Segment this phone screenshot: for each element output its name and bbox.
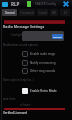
staticText: RM (52, 11, 56, 15)
button[interactable]: General (2, 9, 17, 16)
staticText: software (20, 103, 31, 107)
button[interactable]: Sound (37, 9, 48, 16)
staticText: Sound (39, 11, 47, 15)
button[interactable]: RM (50, 9, 58, 16)
button[interactable]: Enable radio msgs (22, 51, 55, 57)
staticText: Notification sound options (3, 43, 38, 47)
button[interactable]: Enable Retro Mode (22, 88, 57, 94)
staticText: Commands (20, 11, 34, 15)
staticText: Enable radio msgs (30, 52, 55, 56)
staticText: Config file (11, 33, 25, 37)
staticText: Enable Retro Mode (30, 89, 57, 93)
staticText: Radio Message Settings (3, 24, 45, 29)
staticText: wait lines (3, 97, 16, 101)
staticText: Verified Licensed (3, 111, 27, 115)
staticText: EX (64, 11, 67, 15)
staticText: Browse (53, 35, 62, 38)
button[interactable]: Close (62, 0, 70, 8)
staticText: Retro option (only for...) (3, 78, 34, 82)
button[interactable]: Browse (22, 31, 64, 41)
button[interactable]: Notify on new msg (22, 60, 56, 66)
staticText: SPACER Config (35, 2, 56, 6)
button[interactable]: Browse (52, 34, 63, 39)
button[interactable]: EX (60, 9, 70, 16)
staticText: Other msg sounds (30, 69, 56, 73)
staticText: Notify on new msg (30, 61, 56, 65)
staticText: General (5, 11, 15, 15)
staticText: RLP (11, 1, 20, 7)
button[interactable]: Other msg sounds (22, 68, 56, 74)
button[interactable]: App icon (2, 2, 8, 7)
button[interactable]: Commands (19, 9, 35, 16)
